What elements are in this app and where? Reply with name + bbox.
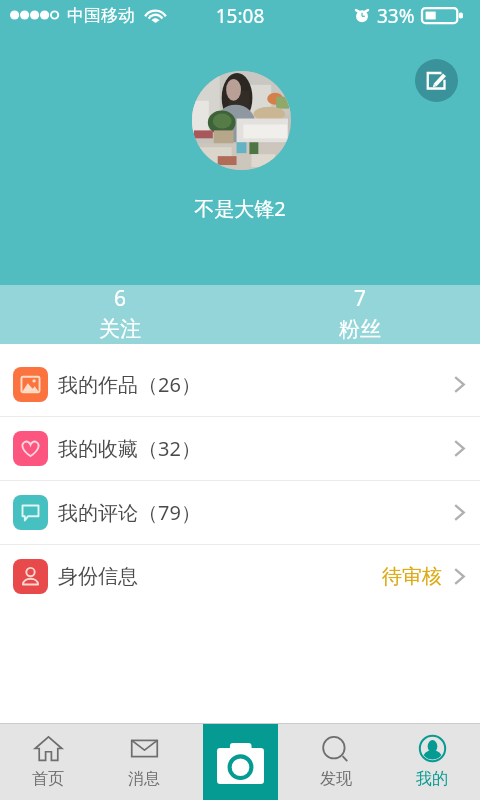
staticText: 消息 bbox=[128, 769, 160, 789]
staticText: 待审核 bbox=[382, 564, 442, 589]
staticText: 关注 bbox=[99, 316, 141, 342]
staticText: 我的收藏（32） bbox=[58, 435, 201, 462]
button[interactable]: 我的 bbox=[384, 724, 480, 800]
staticText: 7 bbox=[354, 284, 367, 313]
button[interactable]: 我的收藏（32） bbox=[0, 417, 480, 480]
button[interactable]: 7 bbox=[240, 285, 480, 344]
staticText: 6 bbox=[114, 284, 127, 313]
button[interactable]: Camera bbox=[203, 724, 278, 800]
staticText: 发现 bbox=[320, 769, 352, 789]
button[interactable]: 发现 bbox=[288, 724, 384, 800]
button[interactable]: 消息 bbox=[96, 724, 192, 800]
button[interactable]: 身份信息 bbox=[0, 545, 480, 608]
staticText: 首页 bbox=[32, 769, 64, 789]
staticText: 15:08 bbox=[0, 3, 480, 29]
button[interactable]: Edit profile bbox=[415, 59, 458, 102]
staticText: 中国移动 bbox=[67, 5, 135, 26]
staticText: 我的 bbox=[416, 769, 448, 789]
button[interactable]: 我的作品（26） bbox=[0, 353, 480, 416]
button[interactable]: Avatar bbox=[192, 71, 291, 170]
staticText: 不是大锋2 bbox=[0, 195, 480, 222]
staticText: 33% bbox=[377, 3, 415, 29]
button[interactable]: 首页 bbox=[0, 724, 96, 800]
staticText: 身份信息 bbox=[58, 564, 138, 589]
button[interactable]: 6 bbox=[0, 285, 240, 344]
staticText: 我的评论（79） bbox=[58, 499, 201, 526]
staticText: 我的作品（26） bbox=[58, 371, 201, 398]
button[interactable]: 我的评论（79） bbox=[0, 481, 480, 544]
staticText: 粉丝 bbox=[339, 316, 381, 342]
